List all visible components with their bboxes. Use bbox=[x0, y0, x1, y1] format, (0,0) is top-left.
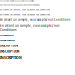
staticText: INSCRIPTION bbox=[0, 44, 18, 47]
staticText: En créant un compte, vous acceptez nos C… bbox=[0, 4, 40, 6]
staticText: En créant un compte, vous acceptez nos C… bbox=[0, 13, 50, 16]
staticText: INSCRIPTION bbox=[0, 49, 19, 53]
staticText: En créant un compte, vous acceptez nos C… bbox=[0, 18, 70, 22]
staticText: INSCRIPTION bbox=[0, 55, 22, 60]
staticText: En créant un compte, vous acceptez nos C… bbox=[0, 0, 35, 2]
staticText: INSCRIPTION bbox=[0, 34, 14, 36]
staticText: INSCRIPTION bbox=[0, 38, 15, 42]
staticText: En créant un compte, vous acceptez nos C… bbox=[0, 24, 59, 32]
staticText: En créant un compte, vous acceptez nos C… bbox=[0, 8, 50, 11]
